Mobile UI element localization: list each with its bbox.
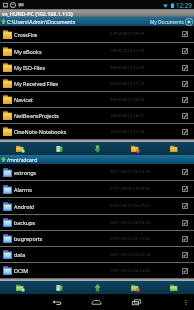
staticText: 10/06/2012 18:21 <box>110 113 145 119</box>
staticText: 03/01/2012 06:07:21 <box>110 203 150 209</box>
button[interactable]: Select <box>181 251 189 259</box>
button[interactable]: Select <box>181 219 189 227</box>
button[interactable]: data <box>0 247 194 262</box>
staticText: 01/01/2005 10:00:06 <box>110 186 150 192</box>
button[interactable]: Bookmarks <box>185 18 193 26</box>
staticText: 06/11/2012 06:53:33 <box>110 169 150 175</box>
button[interactable]: DCIM <box>0 263 194 278</box>
staticText: 12:29 <box>176 1 192 9</box>
staticText: OneNote-Notebooks <box>14 128 67 135</box>
button[interactable]: Upload <box>79 281 115 294</box>
button[interactable]: Select <box>181 30 189 38</box>
staticText: Android <box>14 203 35 210</box>
staticText: Navicat <box>14 96 33 103</box>
button[interactable]: CrossFire <box>0 26 194 42</box>
staticText: My ISO-Files <box>14 64 45 71</box>
button[interactable]: Recents <box>127 294 145 310</box>
button[interactable]: Select <box>181 128 189 136</box>
button[interactable]: Rename <box>156 142 192 155</box>
button[interactable]: NetBeansProjects <box>0 108 194 123</box>
button[interactable]: Navicat <box>0 92 194 107</box>
staticText: 15/11/2012 04:24:58 <box>110 268 150 274</box>
staticText: 27/04/2012 08:09 <box>110 31 145 37</box>
button[interactable]: Paste <box>41 281 77 294</box>
staticText: 06/11/2012 06:58:38 <box>110 220 150 226</box>
button[interactable]: Select <box>181 64 189 72</box>
button[interactable]: Paste <box>41 142 77 155</box>
button[interactable]: New folder <box>2 142 38 155</box>
button[interactable]: Select <box>181 202 189 210</box>
button[interactable]: My ISO-Files <box>0 60 194 75</box>
button[interactable]: Alarms <box>0 181 194 197</box>
staticText: My Documents <box>150 19 184 26</box>
button[interactable]: Select <box>181 168 189 176</box>
button[interactable]: My Received Files <box>0 76 194 91</box>
staticText: NetBeansProjects <box>14 112 59 119</box>
button[interactable]: backups <box>0 215 194 230</box>
button[interactable]: Select <box>181 235 189 243</box>
button[interactable]: OneNote-Notebooks <box>0 124 194 139</box>
button[interactable]: Rename <box>156 281 192 294</box>
button[interactable]: Home <box>87 294 105 310</box>
button[interactable]: More options <box>184 298 188 307</box>
staticText: vs_HUND-PC (192.168.1.113) <box>2 10 73 17</box>
button[interactable]: Select <box>181 96 189 104</box>
button[interactable]: Select <box>181 112 189 120</box>
staticText: My eBooks <box>14 48 42 55</box>
staticText: 20/05/2012 17:19 <box>110 81 145 87</box>
staticText: data <box>14 251 26 258</box>
button[interactable]: estrongs <box>0 164 194 180</box>
staticText: 10/05/2012 21:08 <box>110 129 145 135</box>
staticText: bugreports <box>14 235 43 242</box>
staticText: 06/11/2012 02:42:74 <box>110 252 150 258</box>
button[interactable]: /mnt/sdcard <box>0 155 194 164</box>
staticText: My Received Files <box>14 80 59 87</box>
staticText: /mnt/sdcard <box>7 156 38 163</box>
button[interactable]: C:\Users\Admin\Documents <box>0 17 194 26</box>
staticText: backups <box>14 219 36 226</box>
staticText: Alarms <box>14 186 32 193</box>
button[interactable]: New folder <box>2 281 38 294</box>
staticText: DCIM <box>14 267 29 274</box>
button[interactable]: Select <box>181 47 189 55</box>
staticText: C:\Users\Admin\Documents <box>7 18 76 25</box>
button[interactable]: Select <box>181 267 189 275</box>
staticText: 05/11/2012 05:11:36 <box>110 236 150 242</box>
button[interactable]: Delete <box>117 281 153 294</box>
button[interactable]: Select <box>181 185 189 193</box>
staticText: 06/06/2012 22:09 <box>110 65 145 71</box>
button[interactable]: Android <box>0 198 194 214</box>
button[interactable]: Download <box>79 142 115 155</box>
button[interactable]: Delete <box>117 142 153 155</box>
button[interactable]: My eBooks <box>0 43 194 59</box>
staticText: 06/05/2012 09:06 <box>110 97 145 103</box>
staticText: CrossFire <box>14 31 38 38</box>
staticText: 18/06/2012 11:53 <box>110 48 145 54</box>
button[interactable]: Select <box>181 80 189 88</box>
button[interactable]: Back <box>47 294 65 310</box>
staticText: estrongs <box>14 169 37 176</box>
button[interactable]: bugreports <box>0 231 194 246</box>
